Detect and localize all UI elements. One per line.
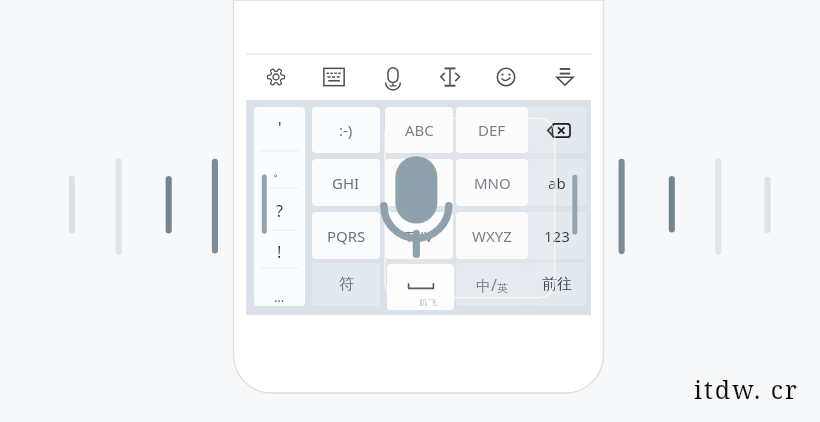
staticText: 符 bbox=[339, 275, 354, 294]
button[interactable]: 123 bbox=[528, 212, 586, 259]
button[interactable]: ABC bbox=[385, 107, 453, 153]
button[interactable]: Settings bbox=[258, 59, 294, 95]
button[interactable]: DEF bbox=[456, 107, 528, 153]
button[interactable]: JKL bbox=[385, 159, 453, 206]
button[interactable]: WXYZ bbox=[456, 212, 528, 259]
staticText: 中 bbox=[476, 277, 491, 296]
button[interactable]: Hide keyboard bbox=[547, 59, 583, 95]
staticText: 前往 bbox=[542, 275, 572, 294]
staticText: ABC bbox=[405, 120, 434, 140]
button[interactable]: ab bbox=[528, 159, 586, 206]
staticText: ? bbox=[276, 200, 283, 222]
staticText: DEF bbox=[478, 120, 506, 140]
staticText: ' bbox=[278, 117, 282, 139]
staticText: 肌 飞 bbox=[419, 296, 438, 307]
button[interactable]: Space bbox=[387, 264, 454, 310]
button[interactable]: 前往 bbox=[528, 263, 586, 306]
staticText: 。 bbox=[273, 163, 286, 179]
staticText: ab bbox=[548, 173, 566, 193]
staticText: WXYZ bbox=[472, 226, 512, 246]
button[interactable]: :-) bbox=[312, 107, 380, 153]
button[interactable]: Backspace bbox=[528, 107, 586, 153]
button[interactable]: PQRS bbox=[312, 212, 380, 259]
staticText: 英 bbox=[497, 281, 508, 295]
staticText: MNO bbox=[474, 173, 511, 193]
staticText: GHI bbox=[332, 173, 360, 193]
button[interactable]: Move cursor bbox=[432, 59, 468, 95]
staticText: 123 bbox=[544, 226, 570, 246]
staticText: / bbox=[491, 274, 497, 296]
button[interactable]: 符 bbox=[312, 263, 380, 306]
button[interactable]: MNO bbox=[456, 159, 528, 206]
staticText: … bbox=[274, 288, 285, 306]
staticText: itdw. cr bbox=[694, 372, 799, 406]
button[interactable] bbox=[254, 107, 305, 306]
button[interactable]: GHI bbox=[312, 159, 380, 206]
button[interactable]: Voice input bbox=[385, 118, 555, 298]
button[interactable]: 中 bbox=[456, 263, 528, 306]
staticText: :-) bbox=[339, 120, 353, 140]
button[interactable]: TUV bbox=[385, 212, 453, 259]
button[interactable]: Voice input bbox=[375, 59, 411, 95]
staticText: PQRS bbox=[327, 226, 366, 246]
staticText: ! bbox=[277, 241, 282, 263]
button[interactable]: Keyboard layout bbox=[316, 59, 352, 95]
staticText: TUV bbox=[405, 226, 434, 246]
button[interactable]: Emoji bbox=[488, 59, 524, 95]
